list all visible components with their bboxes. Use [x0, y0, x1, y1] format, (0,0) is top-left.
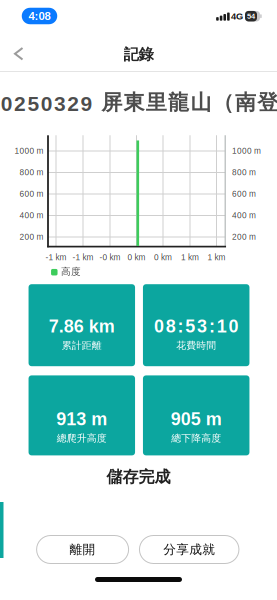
staticText: -0 km [99, 253, 120, 262]
button[interactable]: 離開 [37, 535, 129, 563]
staticText: 離開 [70, 541, 96, 557]
staticText: 913 m [56, 409, 107, 429]
staticText: 4G [231, 11, 243, 21]
staticText: 20250329 屏東里龍山（南登山口） [0, 89, 277, 116]
staticText: 0 km [127, 253, 145, 262]
staticText: 花費時間 [176, 339, 216, 352]
staticText: 08:53:10 [154, 316, 238, 336]
staticText: 200 m [19, 232, 43, 242]
staticText: 高度 [61, 265, 81, 278]
staticText: 400 m [19, 211, 43, 220]
staticText: 累計距離 [62, 339, 102, 352]
staticText: 600 m [232, 189, 256, 199]
staticText: -1 km [72, 253, 93, 262]
staticText: 總下降高度 [171, 432, 221, 444]
button[interactable]: 分享成就 [139, 535, 239, 563]
staticText: 600 m [19, 189, 43, 199]
staticText: 0 km [154, 253, 172, 262]
staticText: 總爬升高度 [57, 432, 107, 444]
staticText: 200 m [232, 232, 256, 242]
staticText: 記錄 [123, 45, 153, 64]
staticText: 7.86 km [49, 316, 115, 336]
staticText: 905 m [171, 409, 222, 429]
staticText: 1000 m [232, 146, 261, 156]
button[interactable] [4, 38, 34, 68]
staticText: 800 m [19, 168, 43, 177]
staticText: 1 km [207, 253, 225, 262]
staticText: 54 [247, 12, 255, 20]
staticText: 400 m [232, 211, 256, 220]
staticText: 儲存完成 [106, 467, 170, 487]
staticText: 分享成就 [163, 541, 215, 557]
staticText: -1 km [45, 253, 66, 262]
staticText: 1000 m [14, 146, 43, 156]
staticText: 4:08 [28, 10, 50, 22]
staticText: 800 m [232, 168, 256, 177]
staticText: 1 km [181, 253, 199, 262]
